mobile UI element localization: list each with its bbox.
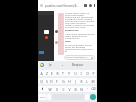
staticText: puzzles.com/forums/4...	[45, 4, 79, 8]
button[interactable]: ?123	[39, 94, 46, 100]
button[interactable]: G	[60, 78, 66, 84]
button[interactable]: V	[66, 86, 72, 92]
button[interactable]: Y	[66, 70, 72, 76]
staticText: L	[86, 79, 88, 84]
button[interactable]: puzzles.com/forums/4...	[38, 0, 97, 11]
button[interactable]: O	[84, 70, 90, 76]
button[interactable]: A	[39, 70, 44, 76]
staticText: Et harum quidem rerum facilis est expedi…	[65, 43, 95, 52]
button[interactable]: C	[60, 86, 66, 92]
staticText: G	[62, 79, 65, 84]
button[interactable]: L	[84, 78, 90, 84]
button[interactable]: Account	[89, 4, 92, 7]
staticText: O	[86, 71, 89, 76]
button[interactable]: Q	[39, 78, 44, 84]
button[interactable]: Google	[40, 63, 44, 67]
staticText: J	[75, 79, 76, 84]
staticText: T	[62, 71, 64, 76]
staticText: H	[68, 79, 71, 84]
staticText: bonjour hey	[65, 29, 79, 32]
staticText: D	[50, 79, 53, 84]
staticText: Z	[46, 71, 48, 76]
staticText: K	[80, 79, 83, 84]
staticText: F	[56, 79, 58, 84]
staticText: Lorem ipsum dolor, sit amet consectetur …	[65, 11, 95, 28]
staticText: Je	[49, 63, 52, 67]
button[interactable]: '	[84, 86, 90, 92]
button[interactable]: Server 2	[45, 36, 48, 39]
button[interactable]: U	[72, 70, 78, 76]
button[interactable]: Send	[90, 94, 96, 100]
staticText: '	[87, 87, 88, 92]
button[interactable]: E	[49, 70, 54, 76]
button[interactable]: S	[44, 78, 49, 84]
staticText: M	[91, 79, 95, 84]
button[interactable]: B	[72, 86, 78, 92]
button[interactable]: D	[49, 78, 54, 84]
staticText: U	[74, 71, 77, 76]
staticText: C	[62, 87, 65, 92]
button[interactable]: ⬆	[39, 86, 46, 92]
staticText: I	[80, 71, 82, 76]
button[interactable]: T	[60, 70, 66, 76]
staticText: R	[56, 71, 59, 76]
staticText: S	[46, 79, 48, 84]
button[interactable]: Z	[44, 70, 49, 76]
button[interactable]: K	[78, 78, 84, 84]
button[interactable]: M	[90, 78, 96, 84]
staticText: E	[51, 71, 53, 76]
button[interactable]: X	[53, 86, 60, 92]
staticText: P	[92, 71, 95, 76]
button[interactable]: I	[78, 70, 84, 76]
staticText: N	[80, 87, 83, 92]
staticText: ⬆	[41, 87, 44, 91]
button[interactable]: J	[72, 78, 78, 84]
button[interactable]: Tabs	[84, 4, 87, 7]
staticText: X	[56, 87, 58, 92]
staticText: Y	[68, 71, 70, 76]
staticText: V	[68, 87, 71, 92]
button[interactable]: R	[54, 70, 60, 76]
button[interactable]: P	[90, 70, 96, 76]
button[interactable]: Write a message to...	[64, 55, 95, 60]
staticText: A	[40, 71, 43, 76]
button[interactable]: F	[54, 78, 60, 84]
staticText: W	[48, 87, 52, 92]
staticText: Nam libero tempore soluta nobis eligendi…	[65, 32, 95, 39]
staticText: Bonjour	[72, 63, 84, 67]
button[interactable]: Server	[44, 30, 49, 34]
staticText: ⌫	[91, 87, 96, 91]
button[interactable]: N	[78, 86, 84, 92]
button[interactable]: ⌫	[90, 86, 96, 92]
staticText: Write a message to...	[66, 56, 89, 59]
staticText: B	[74, 87, 77, 92]
staticText: Q	[40, 79, 43, 84]
staticText: ?123	[40, 96, 45, 99]
button[interactable]: W	[46, 86, 53, 92]
button[interactable]: H	[66, 78, 72, 84]
staticText: hello	[65, 40, 71, 43]
